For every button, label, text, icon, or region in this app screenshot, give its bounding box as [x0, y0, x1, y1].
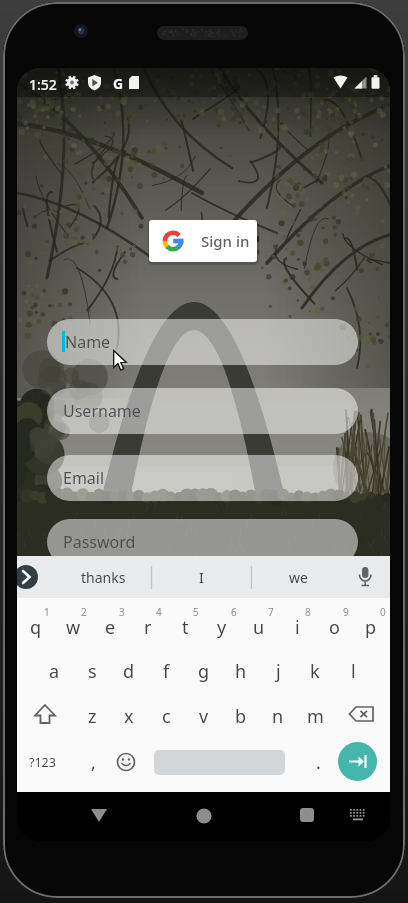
staticText: thanks [81, 568, 126, 587]
button[interactable] [341, 796, 377, 836]
staticText: o [329, 615, 340, 640]
staticText: Email [63, 467, 105, 489]
staticText: w [66, 615, 81, 640]
staticText: 5 [193, 605, 199, 619]
button[interactable]: a [36, 651, 72, 691]
button[interactable] [17, 556, 47, 598]
button[interactable]: Username [47, 388, 358, 434]
staticText: G [113, 74, 124, 93]
button[interactable]: p [353, 607, 389, 647]
staticText: 4 [156, 605, 162, 619]
button[interactable]: Password [47, 519, 358, 565]
staticText: 0 [380, 605, 386, 619]
button[interactable]: e [92, 607, 128, 647]
button[interactable]: r [130, 607, 166, 647]
button[interactable] [347, 556, 387, 598]
staticText: x [124, 704, 134, 729]
button[interactable] [25, 696, 65, 736]
staticText: e [105, 615, 116, 640]
staticText: v [199, 704, 209, 729]
staticText: a [49, 659, 60, 684]
button[interactable]: h [223, 651, 259, 691]
button[interactable]: i [279, 607, 315, 647]
staticText: q [30, 615, 42, 640]
staticText: 1:52 [29, 75, 57, 94]
staticText: h [235, 659, 247, 684]
button[interactable]: ?123 [22, 742, 62, 782]
staticText: n [272, 704, 284, 729]
button[interactable]: k [297, 651, 333, 691]
staticText: k [310, 659, 320, 684]
staticText: I [199, 568, 204, 587]
staticText: 2 [81, 605, 87, 619]
button[interactable]: u [241, 607, 277, 647]
button[interactable]: I [156, 557, 246, 597]
staticText: t [182, 615, 189, 640]
staticText: y [217, 615, 227, 640]
staticText: 8 [305, 605, 311, 619]
button[interactable]: . [300, 742, 336, 782]
staticText: b [235, 704, 247, 729]
staticText: , [91, 750, 96, 775]
button[interactable]: n [260, 696, 296, 736]
staticText: 9 [343, 605, 349, 619]
staticText: 3 [119, 605, 125, 619]
staticText: Name [65, 331, 111, 353]
button[interactable]: q [18, 607, 54, 647]
button[interactable] [79, 795, 119, 835]
button[interactable]: m [297, 696, 333, 736]
staticText: we [289, 568, 308, 587]
button[interactable]: c [148, 696, 184, 736]
button[interactable]: t [167, 607, 203, 647]
button[interactable]: Sign in [149, 220, 257, 262]
staticText: u [253, 615, 265, 640]
staticText: . [316, 750, 321, 775]
button[interactable]: Name [47, 319, 358, 365]
staticText: 7 [268, 605, 274, 619]
staticText: p [365, 615, 377, 640]
button[interactable] [108, 742, 144, 782]
button[interactable] [342, 696, 382, 736]
staticText: ?123 [29, 754, 56, 771]
staticText: g [198, 659, 210, 684]
button[interactable]: Email [47, 455, 358, 501]
button[interactable]: y [204, 607, 240, 647]
staticText: z [88, 704, 97, 729]
button[interactable]: x [111, 696, 147, 736]
button[interactable]: o [316, 607, 352, 647]
staticText: 1 [44, 605, 50, 619]
button[interactable]: f [148, 651, 184, 691]
staticText: Sign in [201, 231, 250, 251]
button[interactable] [184, 796, 224, 836]
staticText: m [307, 704, 324, 729]
button[interactable] [338, 742, 377, 781]
button[interactable]: thanks [58, 557, 148, 597]
button[interactable]: z [74, 696, 110, 736]
staticText: c [162, 704, 171, 729]
button[interactable]: l [335, 651, 371, 691]
staticText: d [123, 659, 135, 684]
staticText: Username [63, 400, 141, 422]
button[interactable]: b [223, 696, 259, 736]
staticText: f [163, 659, 170, 684]
button[interactable]: s [74, 651, 110, 691]
button[interactable]: g [186, 651, 222, 691]
staticText: l [351, 659, 356, 684]
button[interactable]: v [186, 696, 222, 736]
staticText: r [144, 615, 152, 640]
staticText: 6 [231, 605, 237, 619]
button[interactable]: w [55, 607, 91, 647]
button[interactable]: , [75, 742, 111, 782]
button[interactable]: d [111, 651, 147, 691]
staticText: Password [63, 531, 136, 553]
staticText: s [88, 659, 97, 684]
button[interactable]: j [260, 651, 296, 691]
button[interactable] [287, 795, 327, 835]
staticText: j [276, 659, 281, 684]
button[interactable]: we [253, 557, 343, 597]
staticText: i [295, 615, 300, 640]
